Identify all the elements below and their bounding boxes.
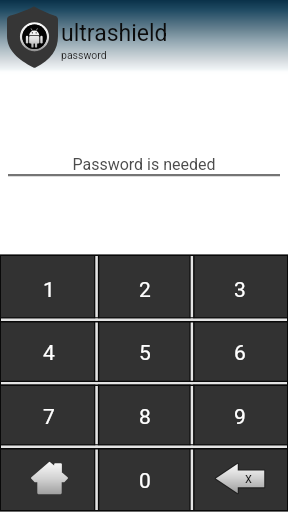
staticText: 2 xyxy=(139,278,151,303)
button[interactable]: 3 xyxy=(192,256,287,319)
staticText: 9 xyxy=(234,405,246,430)
staticText: Password is needed xyxy=(0,155,288,174)
staticText: 8 xyxy=(139,405,151,430)
button[interactable]: Backspace xyxy=(192,446,287,510)
staticText: x xyxy=(245,470,252,486)
staticText: password xyxy=(61,49,107,61)
staticText: 0 xyxy=(139,469,151,494)
staticText: 6 xyxy=(234,341,246,366)
staticText: 3 xyxy=(234,278,246,303)
button[interactable]: 5 xyxy=(97,319,192,382)
button[interactable]: 2 xyxy=(97,256,192,319)
button[interactable]: Home xyxy=(1,446,97,510)
button[interactable]: 7 xyxy=(1,382,97,446)
staticText: 1 xyxy=(43,278,55,303)
button[interactable]: 6 xyxy=(192,319,287,382)
staticText: 5 xyxy=(139,341,151,366)
staticText: 7 xyxy=(43,405,55,430)
button[interactable]: 8 xyxy=(97,382,192,446)
button[interactable]: 9 xyxy=(192,382,287,446)
button[interactable]: 4 xyxy=(1,319,97,382)
button[interactable]: 1 xyxy=(1,256,97,319)
button[interactable]: 0 xyxy=(97,446,192,510)
staticText: ultrashield xyxy=(61,20,168,47)
staticText: 4 xyxy=(43,341,55,366)
